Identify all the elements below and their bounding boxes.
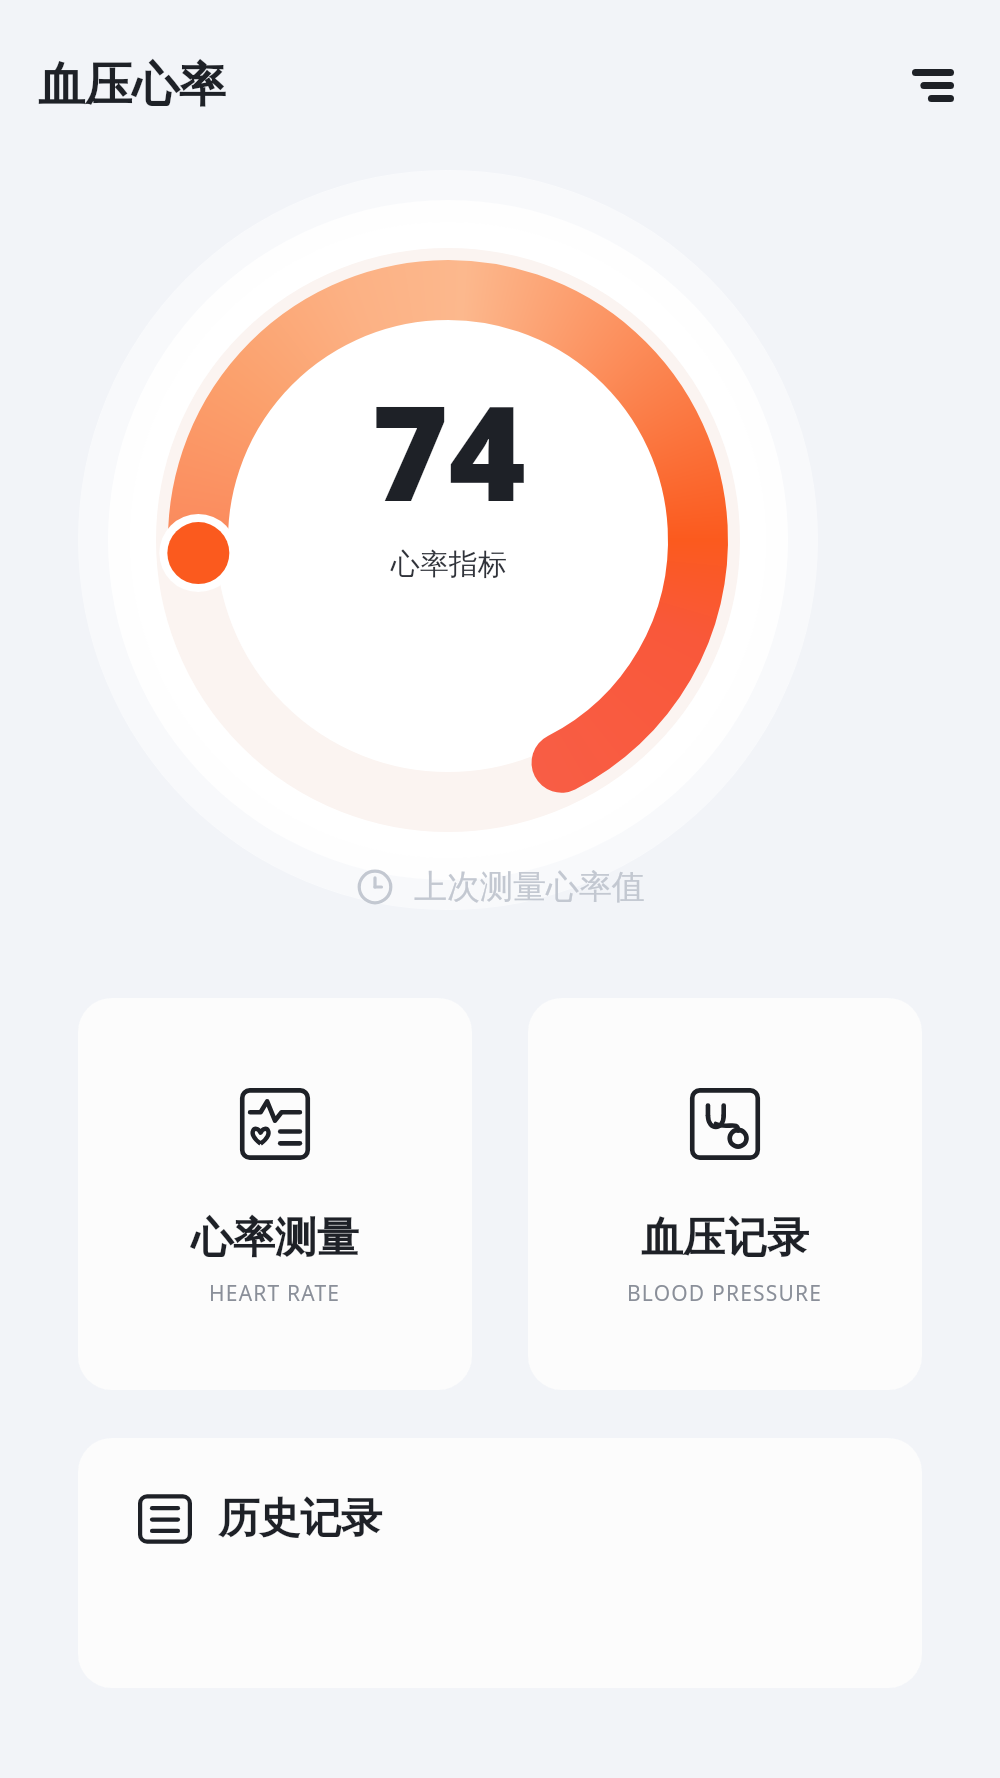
staticText: 上次测量心率值	[414, 866, 645, 908]
staticText: BLOOD PRESSURE	[627, 1279, 823, 1308]
staticText: 心率指标	[391, 546, 507, 583]
staticText: 心率测量	[191, 1212, 359, 1265]
button[interactable]: 心率测量	[78, 998, 472, 1390]
button[interactable]: Menu	[888, 40, 978, 130]
button[interactable]: 历史记录	[78, 1438, 922, 1688]
staticText: HEART RATE	[209, 1279, 341, 1308]
button[interactable]: 血压记录	[528, 998, 922, 1390]
staticText: 74	[371, 360, 526, 540]
staticText: 历史记录	[218, 1493, 382, 1545]
staticText: 血压记录	[641, 1212, 809, 1265]
button[interactable]: 上次测量心率值	[0, 866, 1000, 908]
staticText: 血压心率	[38, 56, 226, 115]
